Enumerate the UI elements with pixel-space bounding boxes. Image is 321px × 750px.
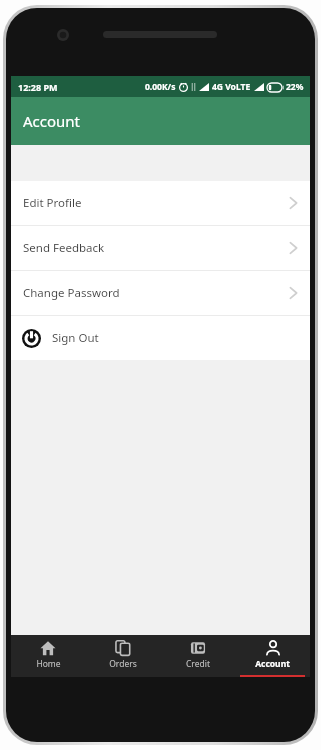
staticText: Account — [23, 111, 81, 131]
button[interactable]: Edit Profile — [11, 181, 310, 225]
staticText: 22% — [286, 81, 304, 93]
button[interactable]: Orders — [85, 635, 160, 677]
staticText: Change Password — [23, 285, 289, 301]
other: Credit — [190, 640, 206, 656]
button[interactable]: Sign Out — [11, 316, 310, 360]
staticText: Credit — [186, 658, 210, 670]
other: Home — [40, 640, 56, 656]
other: Account — [265, 640, 281, 656]
button[interactable]: Account — [235, 635, 310, 677]
button[interactable]: Change Password — [11, 271, 310, 315]
staticText: Edit Profile — [23, 195, 289, 211]
staticText: Account — [255, 658, 290, 670]
staticText: Sign Out — [52, 330, 99, 346]
staticText: Home — [36, 658, 61, 670]
staticText: Send Feedback — [23, 240, 289, 256]
button[interactable]: Credit — [160, 635, 235, 677]
button[interactable]: Send Feedback — [11, 226, 310, 270]
staticText: 4G VoLTE — [212, 81, 251, 93]
staticText: 0.00K/s — [145, 81, 176, 93]
staticText: Orders — [109, 658, 137, 670]
button[interactable]: Home — [11, 635, 85, 677]
other: Orders — [115, 640, 131, 656]
staticText: 12:28 PM — [18, 81, 58, 93]
